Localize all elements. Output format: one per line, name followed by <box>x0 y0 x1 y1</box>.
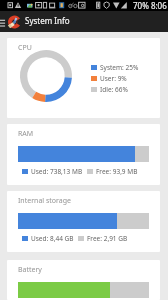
button[interactable]: RAM <box>7 124 160 185</box>
staticText: Internal storage <box>18 196 71 206</box>
staticText: Free: 93,9 MB <box>96 167 138 176</box>
button[interactable]: Internal storage <box>7 191 160 252</box>
button[interactable]: CPU <box>7 38 160 118</box>
staticText: 70% 8:06 <box>133 0 167 11</box>
staticText: User: 9% <box>100 74 127 83</box>
staticText: Idle: 66% <box>100 85 128 94</box>
staticText: System Info <box>25 15 70 26</box>
staticText: Used: 8,44 GB <box>31 234 74 243</box>
staticText: RAM <box>18 129 34 139</box>
staticText: Used: 738,13 MB <box>31 167 83 176</box>
button[interactable]: Battery <box>7 260 160 300</box>
staticText: Battery <box>18 265 42 275</box>
staticText: System: 25% <box>100 63 139 72</box>
button[interactable]: Open navigation drawer <box>0 11 7 32</box>
staticText: CPU <box>18 43 32 53</box>
staticText: Free: 2,91 GB <box>87 234 128 243</box>
